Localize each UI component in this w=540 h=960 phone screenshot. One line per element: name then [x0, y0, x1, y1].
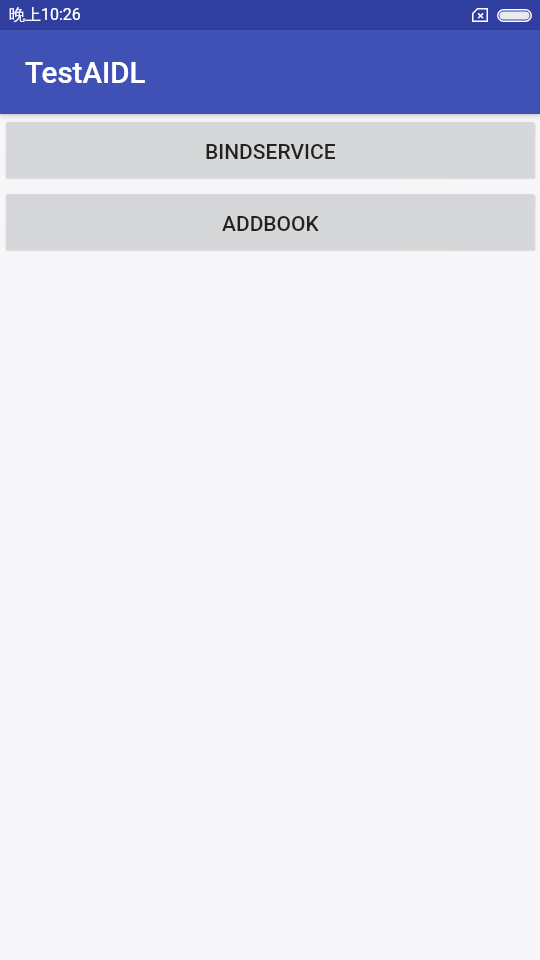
other: No SIM card [472, 8, 488, 22]
button[interactable]: BINDSERVICE [6, 122, 534, 178]
button[interactable]: ADDBOOK [6, 194, 534, 250]
staticText: TestAIDL [25, 56, 146, 91]
other: Battery [497, 9, 532, 22]
staticText: BINDSERVICE [205, 140, 336, 165]
staticText: ADDBOOK [222, 212, 319, 237]
staticText: 晚上10:26 [9, 5, 81, 25]
